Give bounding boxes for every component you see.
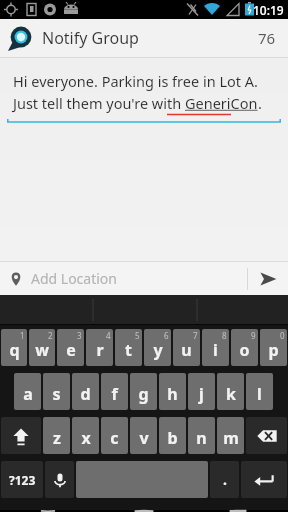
button[interactable]: i <box>202 329 229 366</box>
staticText: n <box>196 427 207 449</box>
staticText: c <box>110 427 119 449</box>
button[interactable]: b <box>159 417 186 454</box>
staticText: b <box>167 427 178 449</box>
staticText: . <box>258 93 262 113</box>
staticText: 8 <box>222 330 227 341</box>
button[interactable]: n <box>188 417 215 454</box>
button[interactable]: c <box>101 417 128 454</box>
staticText: Hi everyone. Parking is free in Lot A. <box>13 71 258 91</box>
staticText: ?123 <box>9 472 36 488</box>
staticText: 4 <box>106 330 111 341</box>
staticText: p <box>268 339 279 361</box>
staticText: v <box>139 427 149 449</box>
staticText: Notify Group <box>42 27 139 49</box>
button[interactable]: Backspace <box>246 417 287 454</box>
staticText: 76 <box>258 28 276 48</box>
staticText: t <box>125 339 132 361</box>
button[interactable]: Home <box>96 510 192 512</box>
button[interactable]: Hide keyboard <box>0 510 96 512</box>
staticText: 2 <box>48 330 53 341</box>
staticText: 9 <box>251 330 256 341</box>
staticText: i <box>213 339 218 361</box>
button[interactable]: d <box>72 373 99 410</box>
button[interactable]: j <box>188 373 215 410</box>
button[interactable]: t <box>115 329 142 366</box>
button[interactable]: v <box>130 417 157 454</box>
button[interactable]: Add Location <box>0 269 247 288</box>
button[interactable]: y <box>144 329 171 366</box>
staticText: 10:19 <box>253 2 284 18</box>
button[interactable]: x <box>72 417 99 454</box>
staticText: GeneriCon <box>185 93 258 113</box>
button[interactable]: Recent apps <box>192 510 288 512</box>
button[interactable]: q <box>1 329 27 366</box>
button[interactable]: Voice input <box>45 461 74 498</box>
button[interactable]: Send <box>248 262 288 295</box>
staticText: o <box>239 339 250 361</box>
staticText: a <box>23 383 33 405</box>
staticText: h <box>167 383 178 405</box>
button[interactable]: k <box>217 373 244 410</box>
staticText: 0 <box>280 330 285 341</box>
staticText: Add Location <box>31 269 117 288</box>
button[interactable]: l <box>246 373 273 410</box>
staticText: f <box>111 383 118 405</box>
button[interactable]: f <box>101 373 128 410</box>
staticText: u <box>181 339 192 361</box>
staticText: l <box>257 383 262 405</box>
staticText: 6 <box>164 330 169 341</box>
button[interactable]: u <box>173 329 200 366</box>
button[interactable]: h <box>159 373 186 410</box>
staticText: j <box>199 383 204 405</box>
button[interactable]: Enter <box>241 461 287 498</box>
button[interactable]: a <box>14 373 41 410</box>
button[interactable]: w <box>29 329 55 366</box>
button[interactable]: g <box>130 373 157 410</box>
button[interactable]: e <box>57 329 84 366</box>
staticText: x <box>81 427 91 449</box>
staticText: 3 <box>77 330 82 341</box>
staticText: g <box>138 383 149 405</box>
staticText: y <box>153 339 163 361</box>
button[interactable]: . <box>210 461 239 498</box>
button[interactable]: o <box>231 329 258 366</box>
button[interactable]: s <box>43 373 70 410</box>
staticText: d <box>80 383 91 405</box>
staticText: Just tell them you're with <box>13 93 185 113</box>
button[interactable]: Hi everyone. Parking is free in Lot A. <box>0 58 288 127</box>
staticText: e <box>66 339 76 361</box>
staticText: w <box>35 339 49 361</box>
staticText: 1 <box>20 330 25 341</box>
staticText: q <box>9 339 20 361</box>
staticText: s <box>52 383 61 405</box>
staticText: . <box>223 470 227 489</box>
button[interactable]: m <box>217 417 244 454</box>
staticText: r <box>96 339 104 361</box>
staticText: 7 <box>193 330 198 341</box>
button[interactable]: Shift <box>1 417 41 454</box>
staticText: z <box>53 427 61 449</box>
button[interactable]: r <box>86 329 113 366</box>
staticText: 5 <box>135 330 140 341</box>
button[interactable]: p <box>260 329 287 366</box>
staticText: k <box>226 383 236 405</box>
button[interactable]: Notify Group <box>0 19 288 57</box>
button[interactable]: ?123 <box>1 461 43 498</box>
button[interactable]: z <box>43 417 70 454</box>
staticText: m <box>223 427 239 449</box>
